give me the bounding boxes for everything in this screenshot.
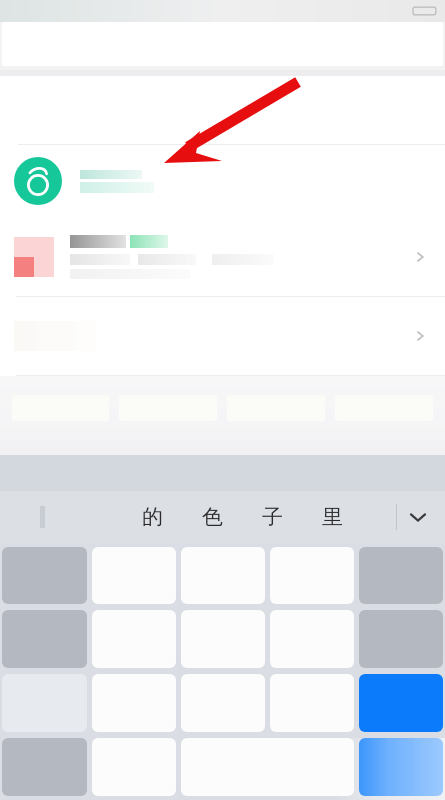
button[interactable]: 的: [140, 500, 165, 534]
other: Open: [411, 248, 429, 266]
staticText: 里: [322, 504, 343, 530]
staticText: 色: [202, 504, 223, 530]
button[interactable]: Open: [0, 218, 445, 296]
button[interactable]: 里: [320, 500, 345, 534]
other: Contact avatar: [14, 157, 62, 205]
button[interactable]: 子: [260, 500, 285, 534]
button[interactable]: Contact avatar: [0, 146, 445, 216]
staticText: 的: [142, 504, 163, 530]
button[interactable]: Key: [359, 674, 443, 732]
button[interactable]: Key: [359, 738, 443, 796]
button[interactable]: Hide keyboard: [401, 500, 435, 534]
staticText: 子: [262, 504, 283, 530]
other: Open: [411, 327, 429, 345]
button[interactable]: 色: [200, 500, 225, 534]
